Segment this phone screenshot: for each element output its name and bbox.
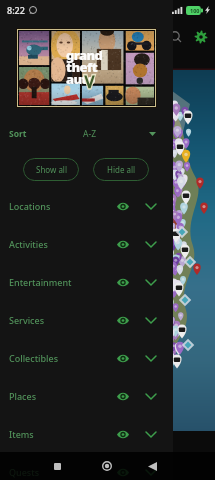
staticText: A-Z — [83, 128, 97, 140]
button[interactable]: Services — [0, 301, 173, 339]
button[interactable]: Expand Places — [139, 377, 163, 415]
button[interactable]: Toggle visibility of Items — [110, 415, 136, 453]
button[interactable]: Toggle visibility of Places — [110, 377, 136, 415]
button[interactable]: Expand Collectibles — [139, 339, 163, 377]
button[interactable]: Toggle visibility of Entertainment — [110, 263, 136, 301]
button[interactable]: Expand Services — [139, 301, 163, 339]
button[interactable]: Activities — [0, 225, 173, 263]
staticText: Show all — [36, 164, 67, 175]
button[interactable]: Expand Items — [139, 415, 163, 453]
staticText: Locations — [9, 200, 51, 212]
staticText: Places — [9, 390, 37, 402]
button[interactable]: Locations — [0, 187, 173, 225]
button[interactable]: Expand Activities — [139, 225, 163, 263]
staticText: auto — [66, 70, 95, 88]
staticText: Quests — [9, 466, 40, 478]
button[interactable]: Home — [94, 453, 120, 479]
staticText: theft — [66, 58, 98, 76]
staticText: Collectibles — [9, 352, 59, 364]
button[interactable]: Toggle visibility of Quests — [110, 453, 136, 480]
staticText: Hide all — [107, 164, 136, 175]
staticText: Items — [9, 428, 34, 440]
button[interactable]: Toggle visibility of Services — [110, 301, 136, 339]
button[interactable]: Quests — [0, 453, 173, 480]
staticText: Sort — [9, 128, 27, 140]
staticText: Services — [9, 314, 45, 326]
staticText: 8:22 — [7, 4, 25, 16]
button[interactable]: Expand Locations — [139, 187, 163, 225]
button[interactable]: Expand Entertainment — [139, 263, 163, 301]
button[interactable]: Places — [0, 377, 173, 415]
button[interactable]: A-Z — [80, 125, 165, 143]
button[interactable]: Toggle visibility of Collectibles — [110, 339, 136, 377]
button[interactable]: Back — [139, 453, 165, 479]
button[interactable]: Toggle visibility of Locations — [110, 187, 136, 225]
button[interactable]: Recents — [44, 453, 70, 479]
button[interactable]: Expand Quests — [139, 453, 163, 480]
button[interactable]: Entertainment — [0, 263, 173, 301]
button[interactable]: Collectibles — [0, 339, 173, 377]
button[interactable]: Toggle visibility of Activities — [110, 225, 136, 263]
staticText: Entertainment — [9, 276, 72, 288]
button[interactable]: Show all — [23, 158, 79, 181]
staticText: 100 — [190, 7, 200, 14]
button[interactable]: Hide all — [93, 158, 149, 181]
staticText: grand — [66, 46, 103, 64]
staticText: Activities — [9, 238, 48, 250]
button[interactable]: Items — [0, 415, 173, 453]
